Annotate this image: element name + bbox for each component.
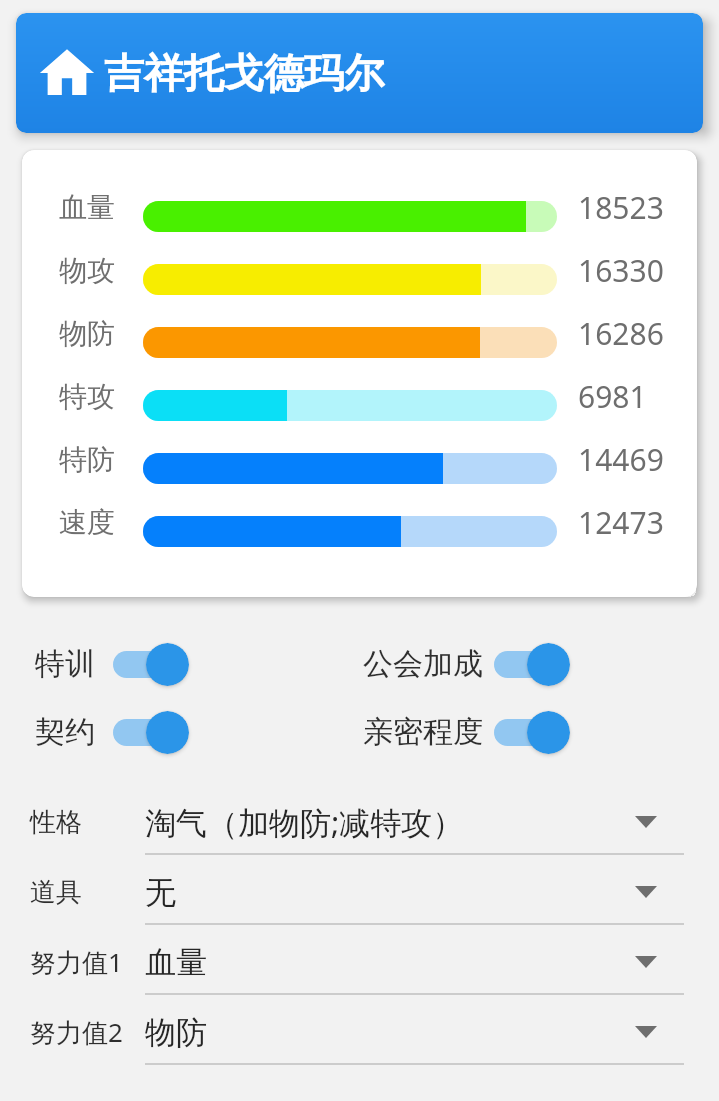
button[interactable]: 性格	[0, 787, 719, 857]
staticText: 血量	[22, 190, 115, 225]
staticText: 物攻	[22, 253, 115, 288]
button[interactable]	[494, 710, 570, 754]
staticText: 吉祥托戈德玛尔	[104, 48, 384, 98]
button[interactable]: 努力值1	[0, 927, 719, 997]
staticText: 公会加成	[363, 645, 483, 683]
staticText: 特攻	[22, 379, 115, 414]
staticText: 16330	[578, 250, 664, 291]
staticText: 努力值1	[30, 944, 123, 980]
staticText: 16286	[578, 313, 664, 354]
staticText: 道具	[30, 876, 82, 909]
staticText: 性格	[30, 806, 82, 839]
button[interactable]: 道具	[0, 857, 719, 927]
staticText: 6981	[578, 376, 647, 417]
button[interactable]	[494, 642, 570, 686]
staticText: 物防	[22, 316, 115, 351]
staticText: 亲密程度	[363, 713, 483, 751]
staticText: 12473	[578, 502, 664, 543]
staticText: 契约	[35, 713, 95, 751]
button[interactable]	[113, 710, 189, 754]
staticText: 物防	[145, 1013, 207, 1052]
staticText: 无	[145, 873, 176, 912]
staticText: 血量	[145, 943, 207, 982]
staticText: 淘气（加物防;减特攻）	[145, 801, 464, 843]
staticText: 特训	[35, 645, 95, 683]
staticText: 14469	[578, 439, 664, 480]
button[interactable]: 吉祥托戈德玛尔	[16, 13, 703, 133]
staticText: 特防	[22, 442, 115, 477]
staticText: 速度	[22, 505, 115, 540]
button[interactable]: 努力值2	[0, 997, 719, 1067]
staticText: 18523	[578, 187, 664, 228]
button[interactable]	[113, 642, 189, 686]
staticText: 努力值2	[30, 1014, 123, 1050]
